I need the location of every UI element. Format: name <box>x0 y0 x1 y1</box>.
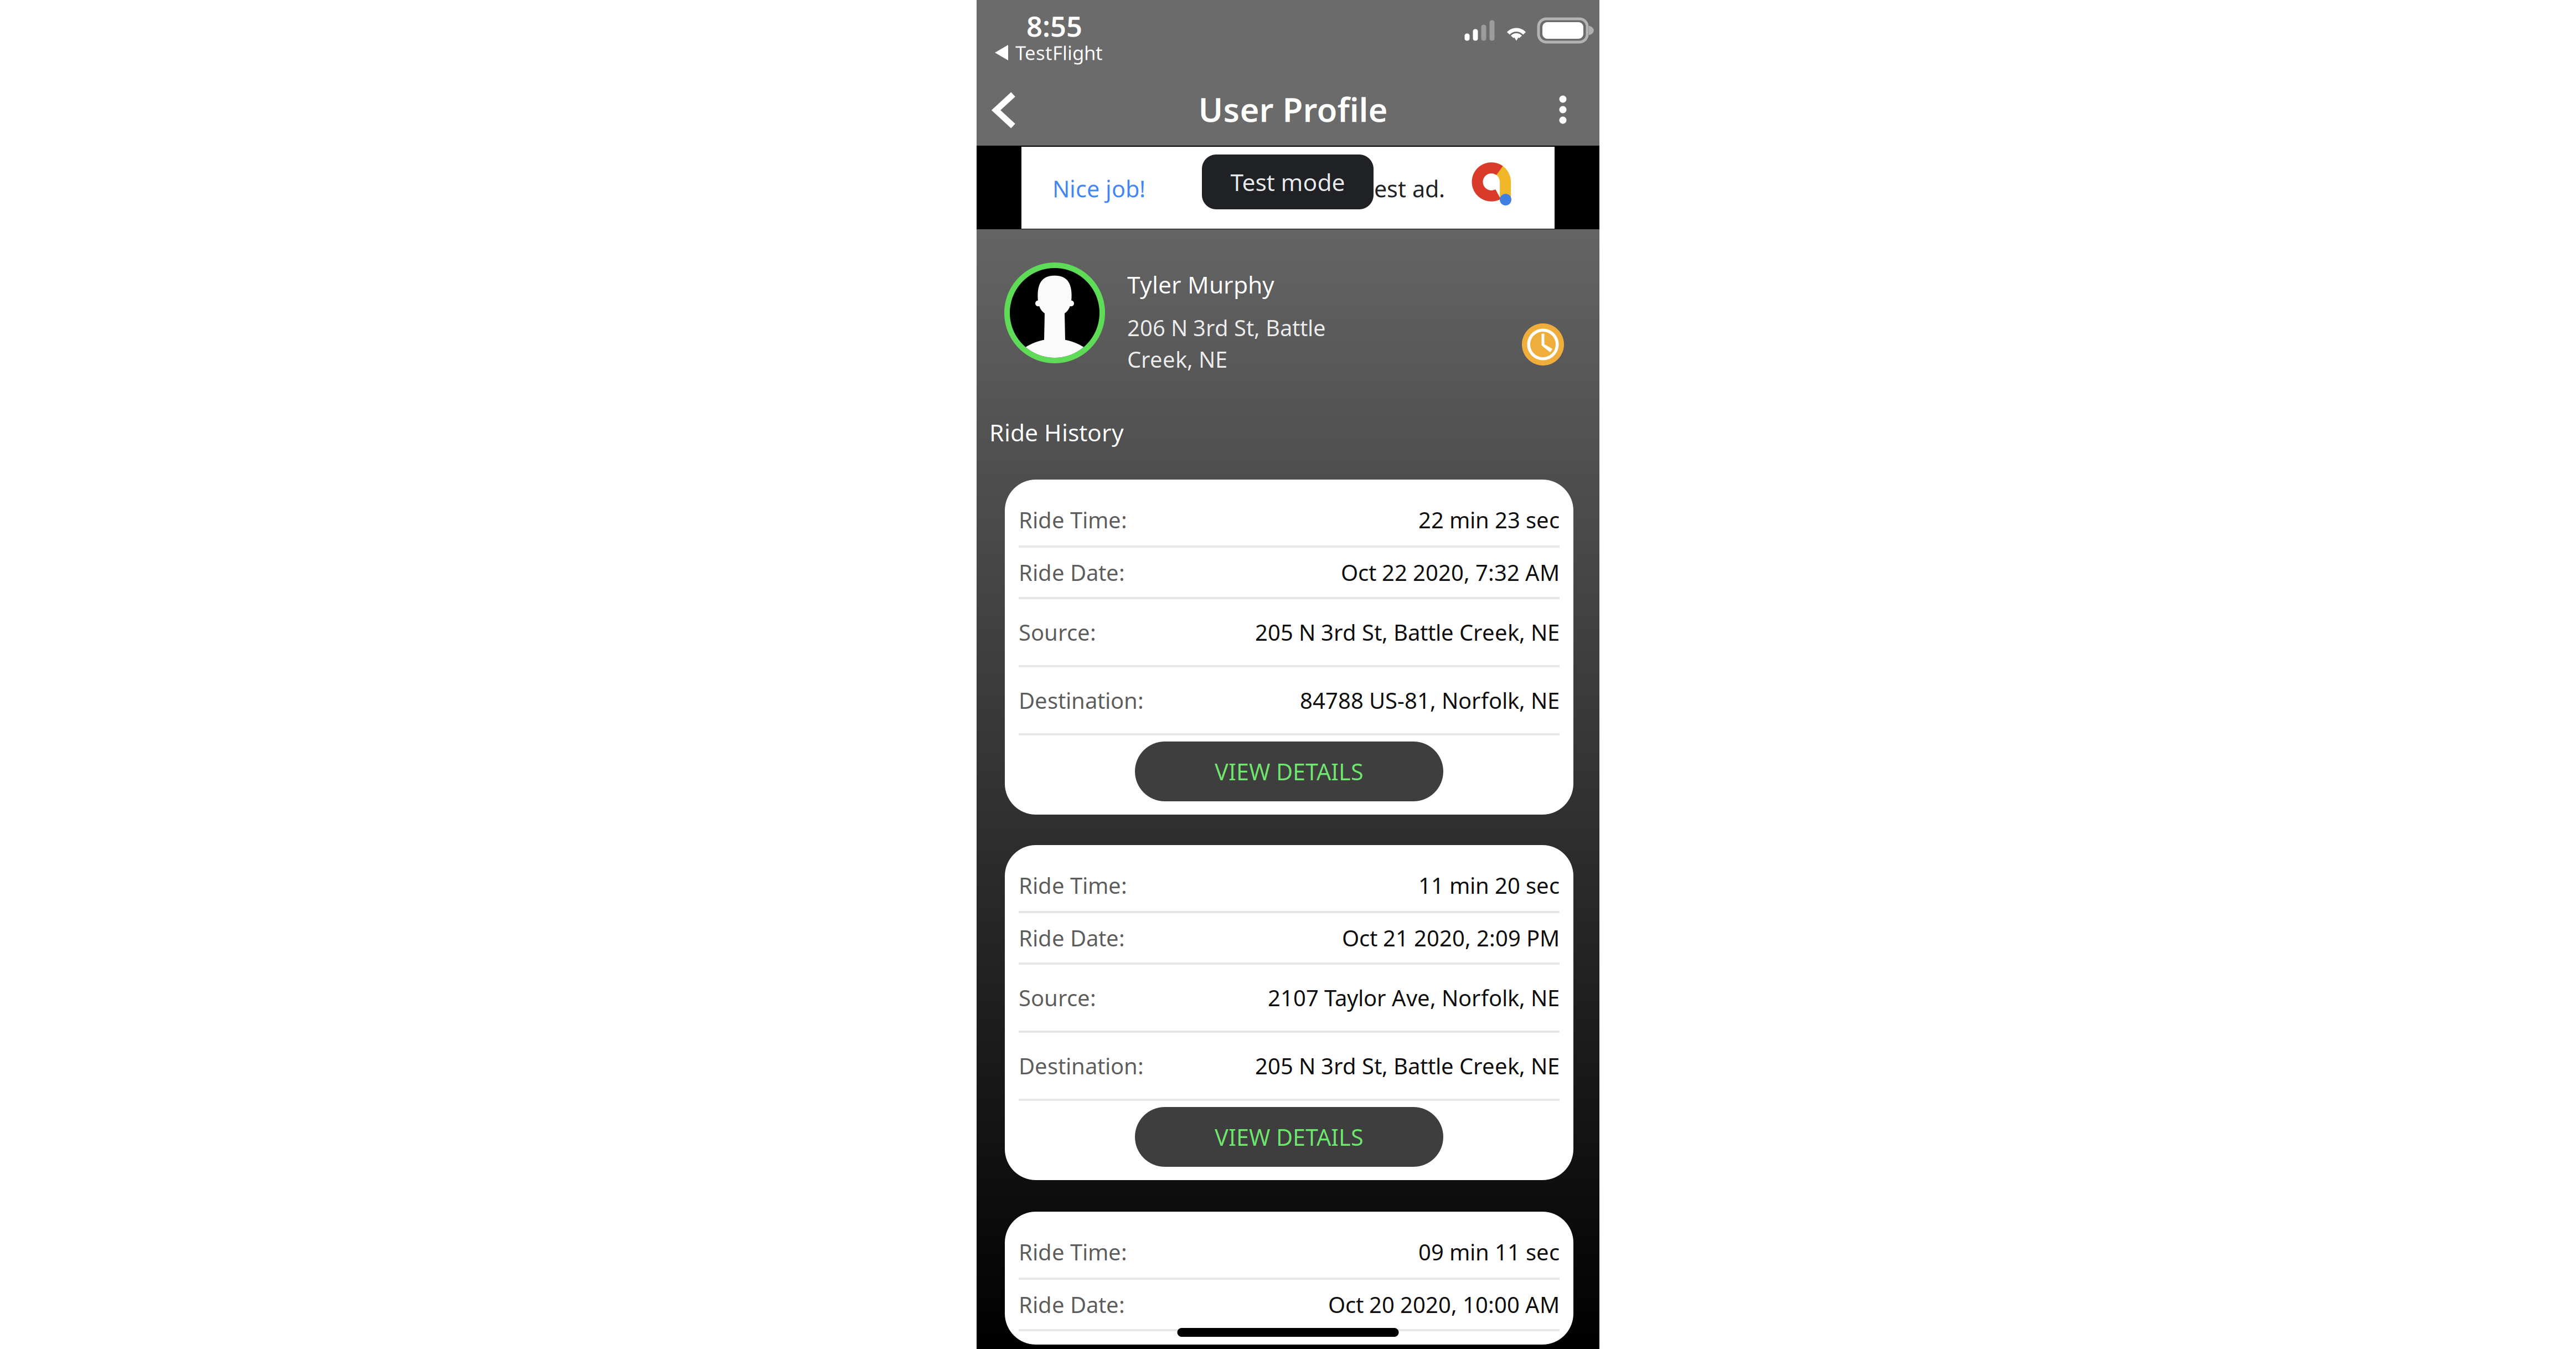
staticText: Source: <box>1019 617 1096 647</box>
staticText: TestFlight <box>1015 40 1103 65</box>
staticText: 84788 US-81, Norfolk, NE <box>1300 686 1560 715</box>
button[interactable]: VIEW DETAILS <box>1019 1107 1560 1167</box>
staticText: Nice job! <box>1052 173 1145 204</box>
button[interactable]: Ride history <box>1515 317 1571 372</box>
staticText: Ride Time: <box>1019 870 1127 900</box>
staticText: 8:55 <box>1026 7 1082 44</box>
button[interactable]: More options <box>1532 77 1593 142</box>
staticText: 09 min 11 sec <box>1418 1237 1560 1266</box>
staticText: Ride Time: <box>1019 505 1127 534</box>
staticText: 205 N 3rd St, Battle Creek, NE <box>1255 1051 1560 1080</box>
staticText: 11 min 20 sec <box>1418 870 1560 900</box>
staticText: VIEW DETAILS <box>1215 1122 1364 1152</box>
staticText: Source: <box>1019 983 1096 1012</box>
staticText: Ride Date: <box>1019 558 1125 587</box>
button[interactable]: Back <box>974 78 1035 143</box>
staticText: 2107 Taylor Ave, Norfolk, NE <box>1268 983 1560 1012</box>
staticText: Oct 22 2020, 7:32 AM <box>1341 558 1560 587</box>
staticText: Ride Time: <box>1019 1237 1127 1266</box>
button[interactable]: VIEW DETAILS <box>1019 742 1560 801</box>
staticText: est ad. <box>1374 173 1445 204</box>
staticText: Destination: <box>1019 686 1144 715</box>
staticText: Creek, NE <box>1127 344 1227 374</box>
staticText: Ride History <box>989 416 1124 448</box>
staticText: 205 N 3rd St, Battle Creek, NE <box>1255 617 1560 647</box>
staticText: Tyler Murphy <box>1127 269 1274 300</box>
staticText: Ride Date: <box>1019 923 1125 952</box>
staticText: Test mode <box>1230 166 1345 198</box>
staticText: Oct 20 2020, 10:00 AM <box>1328 1290 1560 1319</box>
staticText: Oct 21 2020, 2:09 PM <box>1342 923 1560 952</box>
staticText: User Profile <box>1198 87 1388 131</box>
staticText: 206 N 3rd St, Battle <box>1127 313 1326 342</box>
staticText: Ride Date: <box>1019 1290 1125 1319</box>
staticText: 22 min 23 sec <box>1418 505 1560 534</box>
staticText: VIEW DETAILS <box>1215 756 1364 787</box>
staticText: Destination: <box>1019 1051 1144 1080</box>
